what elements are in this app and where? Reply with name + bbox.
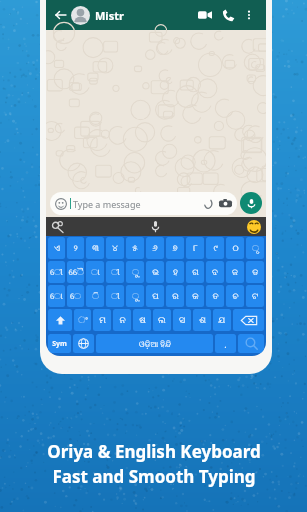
button[interactable]: ଓଡ଼ିଆ ହିନ୍ଦି [96,334,213,353]
button[interactable]: ି [86,285,104,307]
button[interactable]: ପ [146,285,164,307]
button[interactable]: େୈ [67,261,84,283]
button[interactable]: ୀ [106,261,124,283]
staticText: ୀ [111,292,120,301]
other: Backspace [241,315,257,326]
button[interactable]: ୬ [146,237,164,259]
button[interactable]: ୩ [86,237,104,259]
button[interactable]: More options [240,6,258,24]
other: Change language [78,338,89,349]
button[interactable]: ଂ [74,309,91,331]
staticText: ହ [173,268,178,277]
staticText: Oriya & English Keyboard [47,440,261,463]
button[interactable]: ୃ [246,237,264,259]
button[interactable]: Emoji [247,220,261,234]
button[interactable]: Attach [202,197,215,210]
button[interactable]: ଗ [186,261,204,283]
staticText: େୀ [50,268,63,277]
button[interactable]: ଦ [206,261,224,283]
button[interactable]: Voice input [148,219,163,234]
staticText: . [224,338,227,350]
button[interactable]: Call [218,5,238,25]
button[interactable]: ୋ [48,285,65,307]
button[interactable]: ୦ [226,237,244,259]
staticText: ି [92,292,99,301]
button[interactable]: ମ [93,309,111,331]
button[interactable]: ୪ [106,237,124,259]
button[interactable]: Backspace [233,309,264,331]
button[interactable]: ୫ [126,237,144,259]
button[interactable]: ୭ [166,237,184,259]
button[interactable]: Voice message [240,192,262,214]
staticText: େୈ [68,268,84,277]
staticText: ଷ [139,316,146,325]
staticText: ଶ [199,316,206,325]
staticText: Mistr [95,8,124,23]
staticText: ଏ [54,244,60,253]
button[interactable]: ହ [166,261,184,283]
staticText: ଦ [212,268,218,277]
button[interactable]: . [215,334,236,353]
button[interactable]: ୁ [126,261,144,283]
staticText: ତ [212,292,219,301]
staticText: ୭ [172,244,178,253]
button[interactable]: େ [67,285,84,307]
button[interactable]: Camera [219,197,232,210]
button[interactable]: Back [52,6,70,24]
button[interactable]: କ [186,285,204,307]
button[interactable]: Type a message [50,192,237,215]
button[interactable]: ଏ [48,237,65,259]
staticText: ୯ [213,244,218,253]
staticText: ଡ [252,268,259,277]
button[interactable]: ଯ [213,309,231,331]
button[interactable]: ନ [113,309,131,331]
staticText: ୁ [132,292,139,301]
button[interactable]: Settings [51,220,65,234]
staticText: ମ [99,316,106,325]
staticText: ୪ [112,244,118,253]
button[interactable]: ା [86,261,104,283]
staticText: ଗ [192,268,199,277]
staticText: ୮ [193,244,198,253]
button[interactable]: ଭ [146,261,164,283]
button[interactable]: ୨ [67,237,84,259]
button[interactable]: ର [166,285,184,307]
staticText: ୩ [92,244,99,253]
button[interactable]: Video call [195,5,215,25]
staticText: ଟ [252,292,258,301]
button[interactable]: Sym [48,334,71,353]
staticText: ୋ [50,292,63,301]
button[interactable]: ଷ [133,309,151,331]
button[interactable]: ତ [206,285,224,307]
button[interactable]: ୮ [186,237,204,259]
button[interactable] [48,309,72,331]
staticText: ଜ [232,268,238,277]
button[interactable]: Search [238,334,264,353]
staticText: ଚ [232,292,239,301]
staticText: ୀ [111,268,120,277]
button[interactable]: Change language [73,334,94,353]
staticText: ୃ [252,244,259,253]
staticText: ଲ [158,316,166,325]
staticText: କ [192,292,199,301]
staticText: ଯ [218,316,226,325]
button[interactable]: ୁ [126,285,144,307]
staticText: ା [91,268,100,277]
button[interactable]: ଚ [226,285,244,307]
staticText: ଓଡ଼ିଆ ହିନ୍ଦି [139,338,171,349]
button[interactable]: ଶ [193,309,211,331]
button[interactable]: ସ [173,309,191,331]
staticText: ଭ [152,268,159,277]
staticText: ଂ [78,316,88,325]
button[interactable]: ୯ [206,237,224,259]
button[interactable]: ଜ [226,261,244,283]
button[interactable]: ଟ [246,285,264,307]
other: Search [245,337,258,350]
staticText: ୁ [132,268,139,277]
staticText: ୬ [152,244,158,253]
button[interactable]: ଲ [153,309,171,331]
button[interactable]: ଡ [246,261,264,283]
button[interactable]: େୀ [48,261,65,283]
staticText: Sym [52,339,67,349]
button[interactable]: ୀ [106,285,124,307]
